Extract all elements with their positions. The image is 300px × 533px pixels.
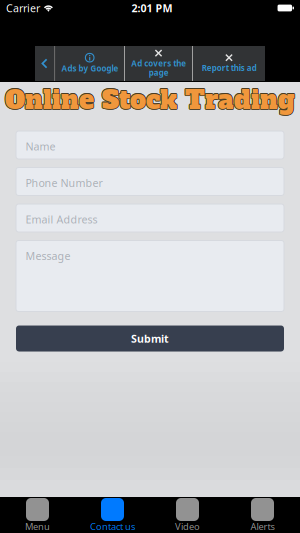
staticText: Message bbox=[25, 249, 70, 263]
staticText: Menu bbox=[25, 520, 50, 533]
button[interactable]: Menu bbox=[0, 497, 75, 533]
staticText: Online Stock Trading bbox=[4, 83, 294, 118]
staticText: Online Stock Trading bbox=[4, 83, 294, 117]
staticText: Contact us bbox=[90, 520, 135, 533]
button[interactable]: Submit bbox=[16, 325, 284, 351]
staticText: Online Stock Trading bbox=[5, 83, 295, 117]
staticText: Video bbox=[175, 520, 200, 533]
staticText: Online Stock Trading bbox=[4, 82, 294, 117]
button[interactable]: Report this ad bbox=[193, 46, 265, 81]
button[interactable]: Back bbox=[35, 46, 54, 81]
button[interactable]: Alerts bbox=[225, 497, 300, 533]
staticText: Report this ad bbox=[201, 63, 256, 73]
staticText: Email Address bbox=[25, 212, 97, 226]
staticText: Online Stock Trading bbox=[6, 83, 296, 117]
staticText: Ad covers the page bbox=[131, 58, 186, 78]
staticText: Phone Number bbox=[25, 176, 102, 190]
button[interactable]: Video bbox=[150, 497, 225, 533]
staticText: Online Stock Trading bbox=[5, 83, 295, 118]
staticText: Carrier bbox=[6, 1, 40, 15]
button[interactable]: Ads by Google bbox=[55, 46, 124, 81]
button[interactable]: Ad covers the page bbox=[125, 46, 192, 81]
staticText: Submit bbox=[131, 331, 169, 346]
staticText: Online Stock Trading bbox=[6, 83, 296, 118]
staticText: Ads by Google bbox=[61, 63, 118, 74]
staticText: Name bbox=[25, 139, 55, 153]
staticText: 2:01 PM bbox=[131, 1, 172, 15]
staticText: Alerts bbox=[250, 520, 274, 533]
staticText: Online Stock Trading bbox=[5, 82, 295, 117]
staticText: Online Stock Trading bbox=[6, 82, 296, 117]
button[interactable]: Contact us bbox=[75, 497, 150, 533]
